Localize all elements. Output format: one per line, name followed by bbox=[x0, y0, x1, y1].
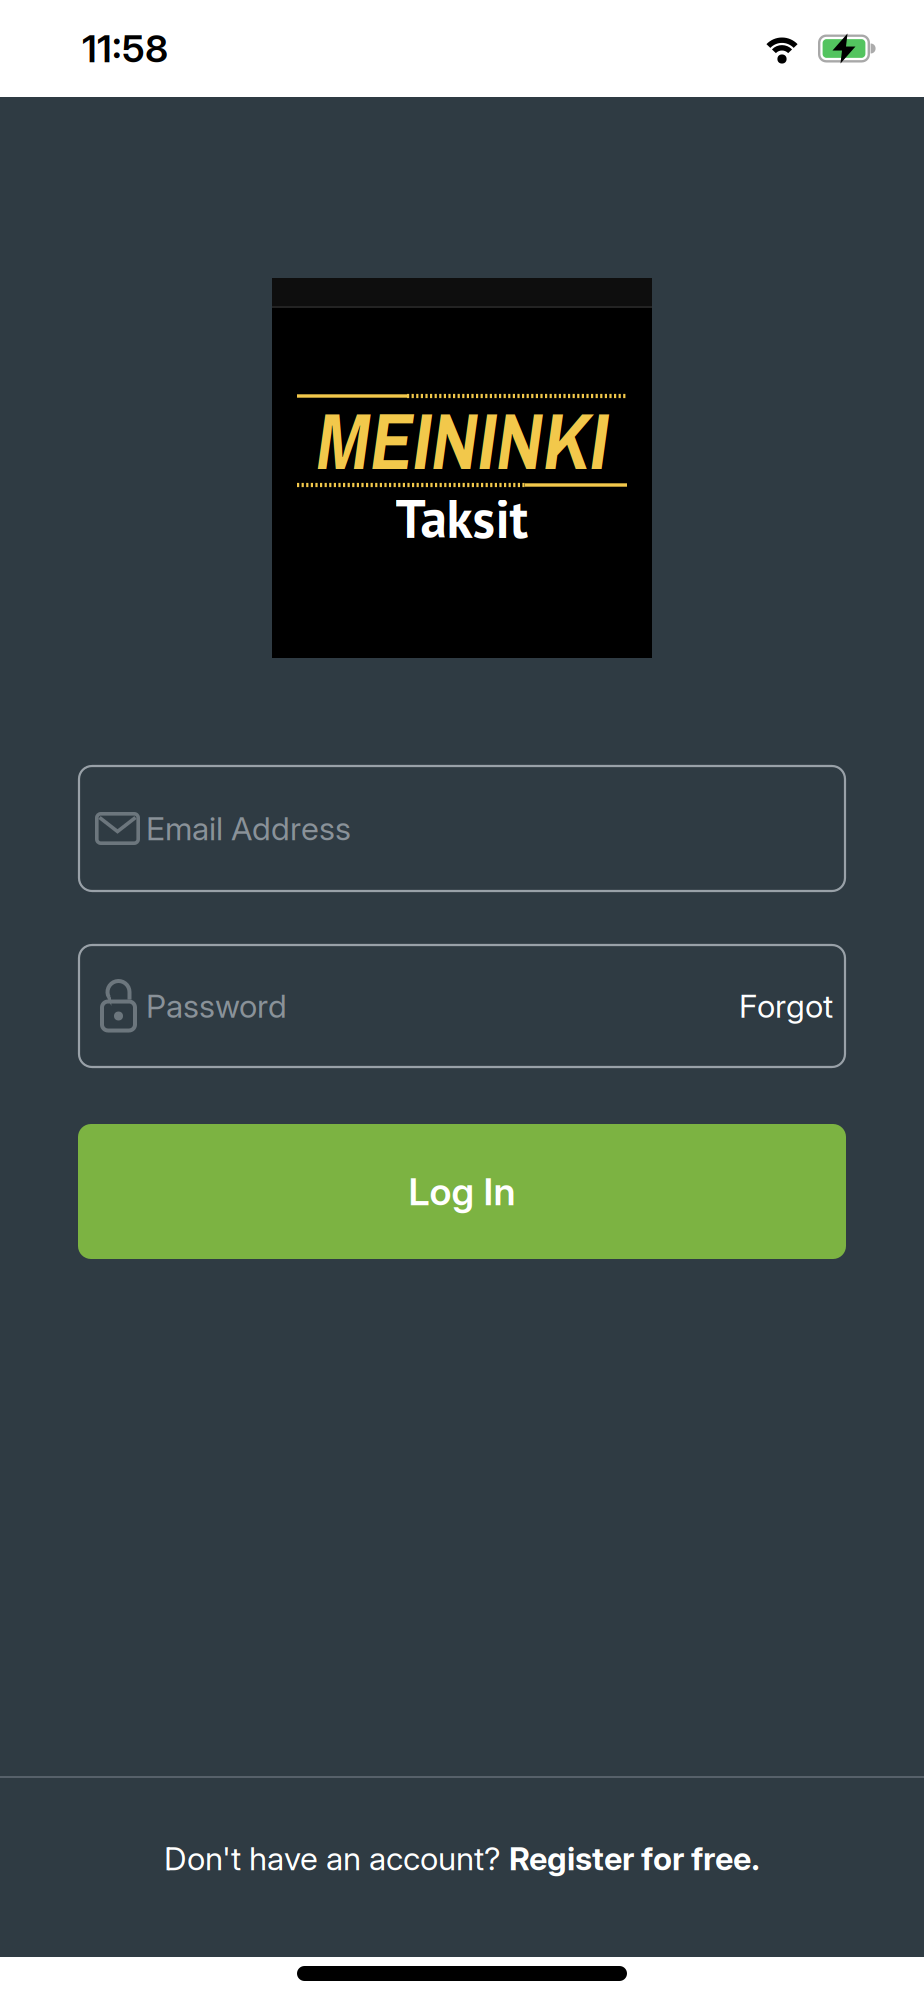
staticText: MEININKI bbox=[316, 387, 608, 494]
button[interactable]: Email Address bbox=[79, 766, 845, 891]
staticText: Taksit bbox=[395, 483, 528, 552]
button[interactable]: Password bbox=[79, 945, 845, 1067]
staticText: Forgot bbox=[739, 987, 833, 1025]
staticText: Don't have an account? Register for free… bbox=[164, 1840, 760, 1877]
staticText: Email Address bbox=[146, 809, 351, 848]
button[interactable]: Don't have an account? Register for free… bbox=[164, 1840, 760, 1877]
button[interactable]: Forgot bbox=[739, 987, 833, 1025]
staticText: Password bbox=[146, 987, 287, 1025]
staticText: 11:58 bbox=[82, 25, 168, 71]
button[interactable]: Log In bbox=[78, 1124, 846, 1259]
staticText: Log In bbox=[408, 1168, 515, 1214]
